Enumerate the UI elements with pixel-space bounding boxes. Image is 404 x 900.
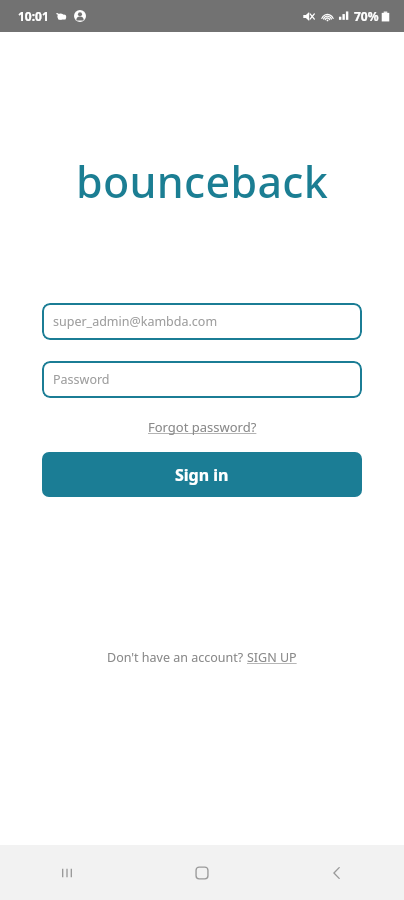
staticText: 70% [354,8,379,24]
button[interactable]: Password [42,361,362,398]
staticText: Don't have an account? [107,649,247,666]
button[interactable]: super_admin@kambda.com [42,303,362,340]
button[interactable]: Home [134,845,269,900]
staticText: bounceback [76,152,329,211]
button[interactable]: Back [269,845,404,900]
staticText: Sign in [175,464,229,486]
button[interactable]: Forgot password? [142,415,263,439]
button[interactable]: SIGN UP [247,649,297,666]
staticText: Forgot password? [148,418,257,436]
staticText: SIGN UP [247,649,297,666]
button[interactable]: Recent apps [0,845,134,900]
staticText: Password [53,371,110,388]
staticText: 10:01 [18,8,49,24]
staticText: super_admin@kambda.com [53,313,218,330]
button[interactable]: Sign in [42,452,362,497]
